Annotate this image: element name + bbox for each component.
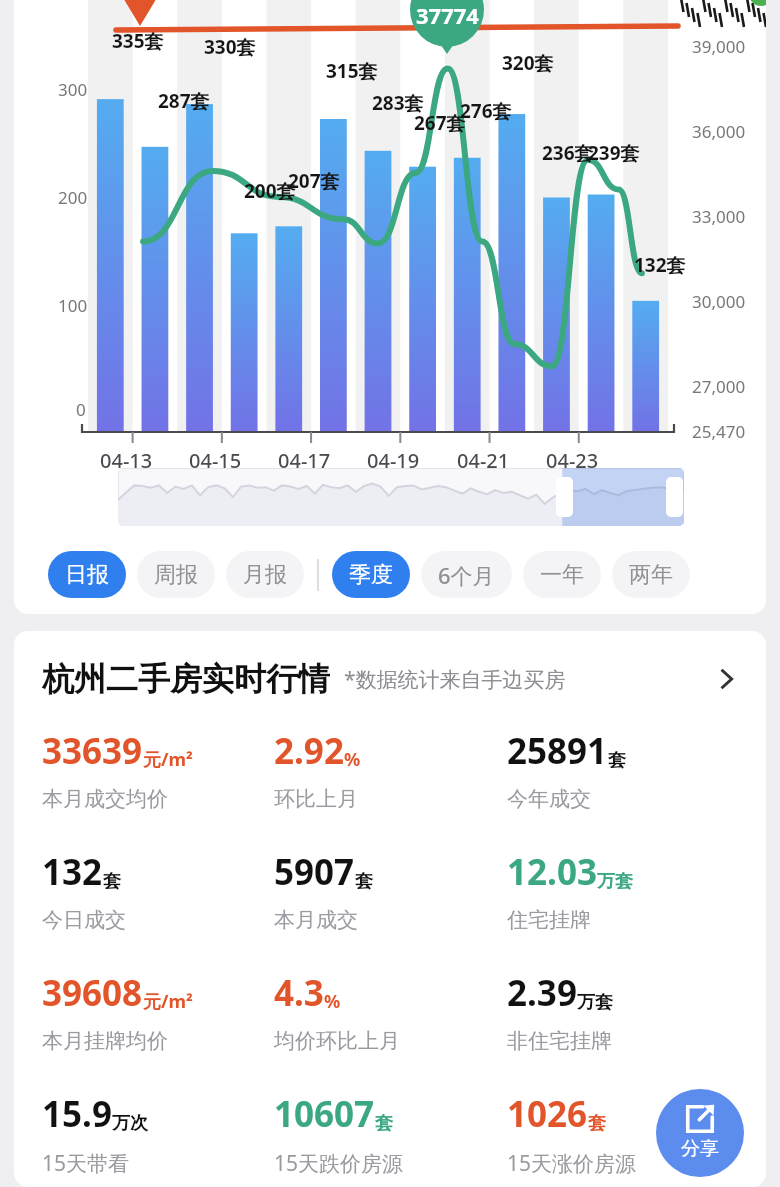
staticText: 04-17 [278,447,331,474]
button[interactable]: 15.9 [42,1090,274,1178]
staticText: 周报 [154,561,198,589]
button[interactable]: 10607 [274,1090,507,1178]
staticText: % [324,989,341,1014]
staticText: 本月成交均价 [42,786,168,812]
staticText: 两年 [629,561,673,589]
staticText: 今年成交 [507,786,591,812]
staticText: 27,000 [692,375,746,398]
button[interactable]: 两年 [612,551,690,598]
staticText: % [344,747,361,772]
staticText: 杭州二手房实时行情 [42,659,330,699]
staticText: 元/m² [143,989,193,1014]
staticText: 2.39 [507,969,577,1017]
staticText: 套 [588,1112,606,1135]
staticText: 239套 [588,140,640,166]
button[interactable]: 33639 [42,727,274,812]
button[interactable]: 39608 [42,969,274,1054]
staticText: 万次 [112,1112,148,1135]
staticText: 非住宅挂牌 [507,1028,612,1054]
staticText: 267套 [414,110,466,136]
staticText: 132套 [634,252,686,278]
staticText: 2.92 [274,727,344,775]
staticText: 万套 [577,991,613,1014]
button[interactable]: 12.03 [507,848,754,933]
staticText: 元/m² [143,747,193,772]
staticText: 万套 [597,870,633,893]
staticText: 15天涨价房源 [507,1149,637,1178]
staticText: 12.03 [507,848,597,896]
staticText: 本月挂牌均价 [42,1028,168,1054]
staticText: 236套 [542,140,594,166]
staticText: 330套 [204,34,256,60]
staticText: 月报 [243,561,287,589]
staticText: 5907 [274,848,355,896]
staticText: 36,000 [692,120,746,143]
button[interactable]: 周报 [137,551,215,598]
staticText: 日报 [65,561,109,589]
staticText: 287套 [158,88,210,114]
button[interactable]: 6个月 [421,551,512,598]
button[interactable]: 4.3 [274,969,507,1054]
staticText: 6个月 [438,560,495,590]
button[interactable]: 5907 [274,848,507,933]
other: 查看更多 [712,665,740,693]
button[interactable]: 范围终点 [666,477,683,517]
button[interactable]: 范围起点 [556,477,573,517]
staticText: 一年 [540,561,584,589]
staticText: 320套 [502,50,554,76]
staticText: 套 [103,870,121,893]
staticText: 335套 [112,28,164,54]
button[interactable]: 月报 [226,551,304,598]
button[interactable]: 范围起点 [118,468,684,526]
button[interactable]: 季度 [332,551,410,598]
button[interactable]: 25891 [507,727,754,812]
staticText: 132 [42,848,103,896]
staticText: 200套 [244,178,296,204]
staticText: 33639 [42,727,143,775]
button[interactable]: 132 [42,848,274,933]
staticText: 均价环比上月 [274,1028,400,1054]
staticText: 15天带看 [42,1149,130,1178]
staticText: 04-23 [546,447,599,474]
staticText: 25891 [507,727,608,775]
button[interactable]: 分享 [656,1089,744,1177]
staticText: 25,470 [692,420,746,443]
button[interactable]: 一年 [523,551,601,598]
staticText: 15天跌价房源 [274,1149,404,1178]
staticText: 04-21 [457,447,510,474]
staticText: 1026 [507,1090,588,1138]
button[interactable]: 1026 [507,1090,754,1178]
staticText: 04-13 [100,447,153,474]
staticText: 4.3 [274,969,324,1017]
staticText: 环比上月 [274,786,358,812]
staticText: 0 [76,398,86,421]
staticText: 04-15 [189,447,242,474]
staticText: 30,000 [692,290,746,313]
staticText: 分享 [681,1137,719,1161]
staticText: 37774 [416,0,479,30]
staticText: 住宅挂牌 [507,907,591,933]
staticText: 套 [375,1112,393,1135]
staticText: 276套 [460,98,512,124]
staticText: 04-19 [367,447,420,474]
button[interactable]: 杭州二手房实时行情 [42,659,754,699]
button[interactable]: 日报 [48,551,126,598]
staticText: 本月成交 [274,907,358,933]
staticText: 207套 [288,168,340,194]
staticText: 200 [58,186,88,209]
staticText: 283套 [372,90,424,116]
button[interactable]: 2.92 [274,727,507,812]
button[interactable]: 2.39 [507,969,754,1054]
staticText: 季度 [349,561,393,589]
staticText: 33,000 [692,205,746,228]
staticText: *数据统计来自手边买房 [344,665,566,694]
staticText: 100 [58,294,88,317]
staticText: 300 [58,78,88,101]
staticText: 套 [608,749,626,772]
staticText: 套 [355,870,373,893]
staticText: 315套 [326,58,378,84]
staticText: 39608 [42,969,143,1017]
staticText: 39,000 [692,35,746,58]
staticText: 10607 [274,1090,375,1138]
staticText: 今日成交 [42,907,126,933]
